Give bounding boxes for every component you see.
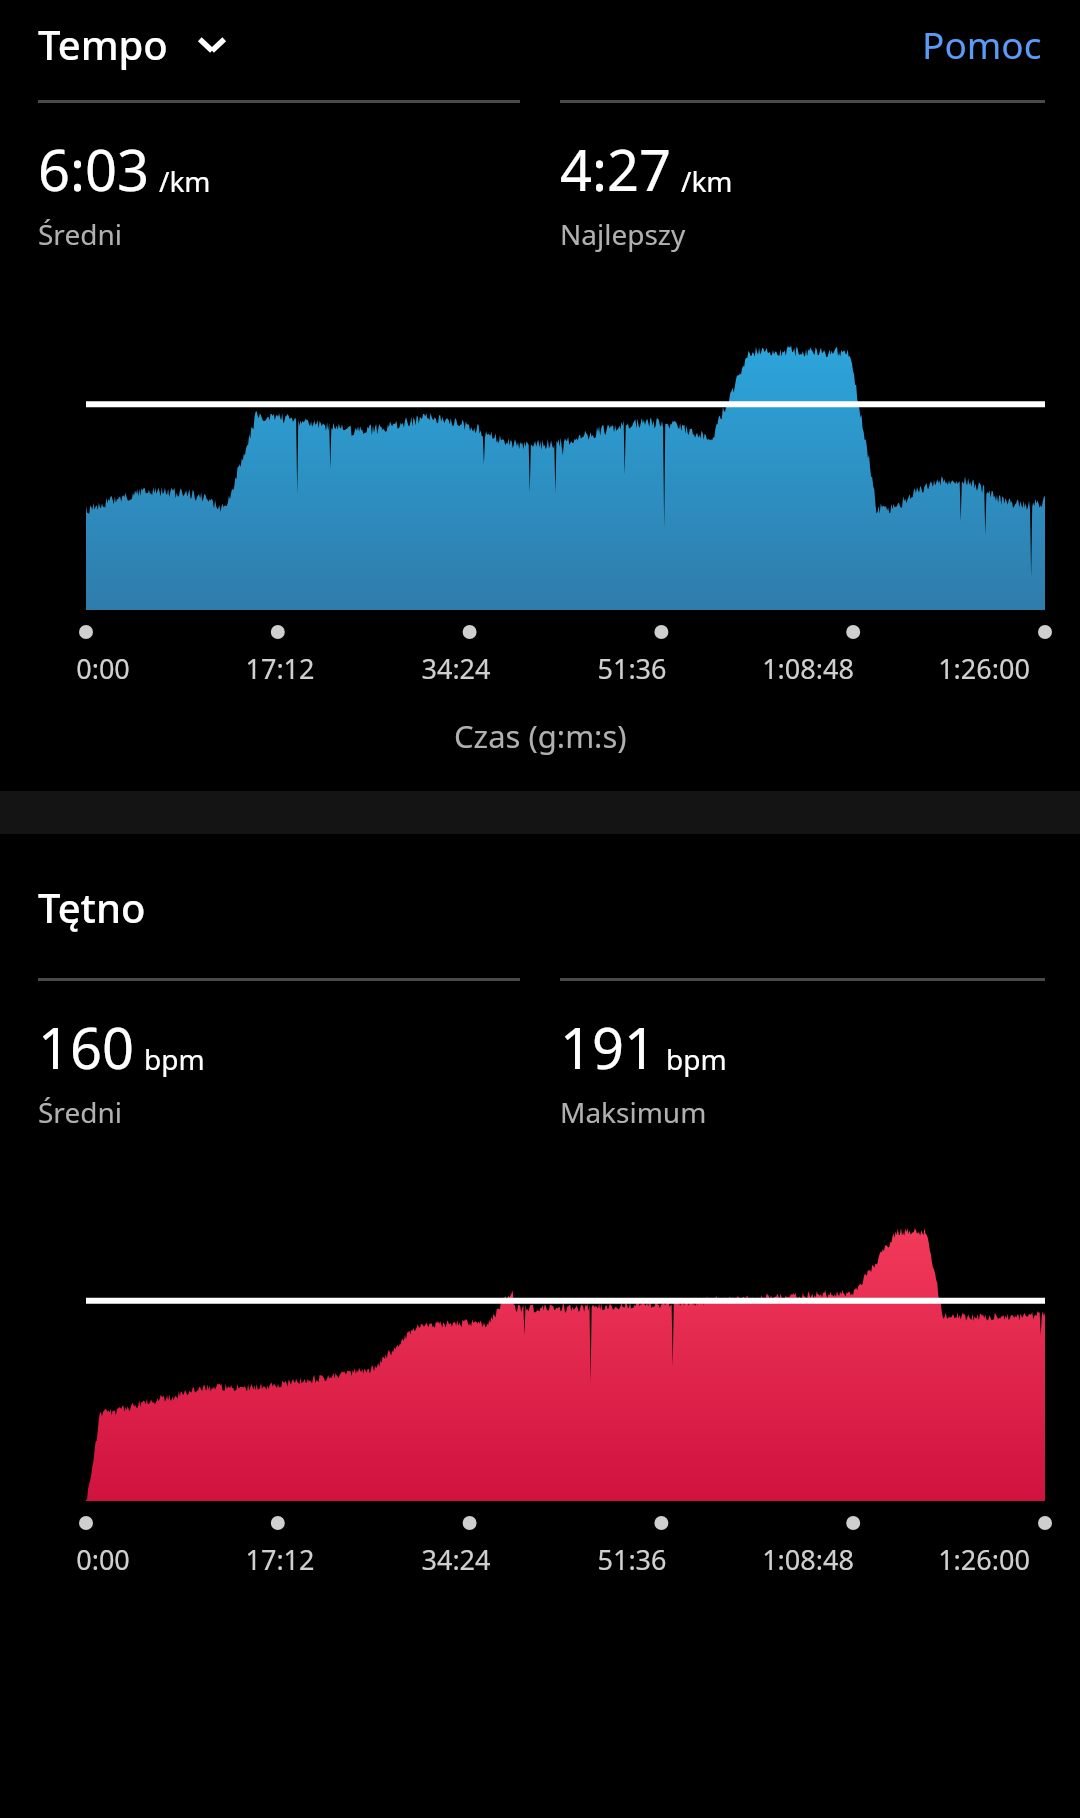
staticText: 34:24: [421, 1541, 491, 1578]
staticText: Tętno: [38, 880, 146, 934]
staticText: 0:00: [76, 650, 130, 687]
staticText: 4:27: [560, 131, 672, 207]
button[interactable]: Pomoc: [922, 19, 1042, 69]
staticText: 17:12: [245, 1541, 315, 1578]
staticText: Maksimum: [560, 1093, 707, 1131]
staticText: 6:03: [38, 131, 150, 207]
staticText: /km: [159, 162, 211, 200]
staticText: /km: [681, 162, 733, 200]
staticText: 160: [38, 1009, 135, 1085]
staticText: 34:24: [421, 650, 491, 687]
staticText: Najlepszy: [560, 215, 686, 253]
staticText: 51:36: [597, 1541, 667, 1578]
staticText: Pomoc: [922, 19, 1042, 69]
staticText: 0:00: [76, 1541, 130, 1578]
staticText: Tempo: [38, 17, 168, 71]
staticText: 1:26:00: [938, 1541, 1030, 1578]
staticText: 1:08:48: [762, 1541, 854, 1578]
other: Rozwiń: [194, 26, 230, 62]
staticText: 1:26:00: [938, 650, 1030, 687]
staticText: 191: [560, 1009, 657, 1085]
staticText: 1:08:48: [762, 650, 854, 687]
staticText: 17:12: [245, 650, 315, 687]
staticText: Średni: [38, 1093, 122, 1131]
staticText: bpm: [666, 1040, 727, 1078]
staticText: Średni: [38, 215, 122, 253]
button[interactable]: Tempo: [38, 17, 240, 71]
staticText: 51:36: [597, 650, 667, 687]
staticText: Czas (g:m:s): [454, 715, 627, 757]
staticText: bpm: [144, 1040, 205, 1078]
